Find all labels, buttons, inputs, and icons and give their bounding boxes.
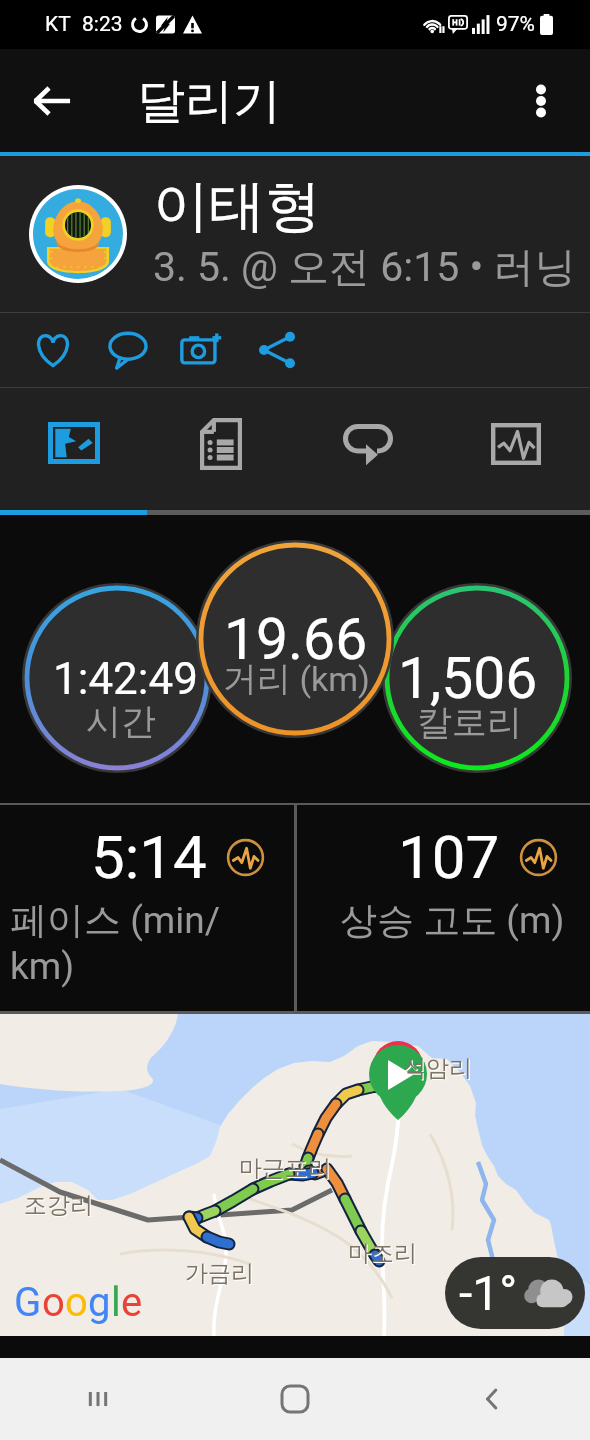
button[interactable]: Back bbox=[393, 1358, 590, 1440]
staticText: 시간 bbox=[86, 699, 156, 743]
button[interactable]: More options bbox=[510, 70, 572, 132]
button[interactable]: Recents bbox=[0, 1358, 196, 1440]
staticText: 19.66 bbox=[224, 606, 368, 673]
button[interactable]: Laps bbox=[294, 388, 442, 510]
staticText: e bbox=[121, 1279, 143, 1326]
staticText: 마조리 bbox=[349, 1240, 418, 1269]
button[interactable]: Map bbox=[0, 388, 147, 510]
staticText: 가금리 bbox=[185, 1259, 254, 1288]
staticText: 조강리 bbox=[25, 1192, 94, 1221]
staticText: 마근포리 bbox=[240, 1155, 332, 1184]
button[interactable]: Details bbox=[147, 388, 294, 510]
staticText: 조강리 bbox=[24, 1191, 93, 1220]
button[interactable]: Home bbox=[196, 1358, 393, 1440]
button[interactable]: 1,506 bbox=[382, 635, 572, 775]
staticText: 97% bbox=[496, 12, 535, 37]
button[interactable]: 107 bbox=[298, 805, 590, 1011]
button[interactable]: Comment bbox=[97, 319, 159, 381]
staticText: -1° bbox=[459, 1265, 518, 1321]
staticText: 석암리 bbox=[403, 1054, 472, 1083]
staticText: l bbox=[111, 1279, 121, 1326]
button[interactable]: Like bbox=[22, 319, 84, 381]
button[interactable]: Add photo bbox=[172, 319, 234, 381]
staticText: 1,506 bbox=[398, 645, 538, 712]
staticText: 페이스 (min/km) bbox=[10, 897, 234, 988]
staticText: 5:14 bbox=[91, 822, 207, 892]
button[interactable]: 1:42:49 bbox=[22, 635, 212, 775]
staticText: 상승 고도 (m) bbox=[340, 897, 565, 944]
staticText: g bbox=[88, 1279, 111, 1326]
staticText: 1:42:49 bbox=[53, 653, 198, 705]
button[interactable]: Heart rate bbox=[442, 388, 590, 510]
staticText: KT bbox=[45, 12, 71, 37]
staticText: o bbox=[42, 1279, 65, 1326]
button[interactable]: Share bbox=[247, 319, 309, 381]
button[interactable]: Route map bbox=[0, 1014, 590, 1336]
staticText: G bbox=[14, 1279, 42, 1326]
staticText: 107 bbox=[398, 822, 500, 892]
staticText: 가금리 bbox=[186, 1260, 255, 1289]
button[interactable]: 19.66 bbox=[196, 595, 394, 725]
staticText: 마조리 bbox=[348, 1239, 417, 1268]
button[interactable]: Weather bbox=[445, 1257, 585, 1329]
staticText: 이태형 bbox=[153, 171, 321, 242]
staticText: 석암리 bbox=[404, 1055, 473, 1084]
staticText: 달리기 bbox=[137, 71, 281, 131]
staticText: 거리 (km) bbox=[223, 658, 370, 701]
button[interactable]: Back bbox=[20, 69, 84, 133]
staticText: o bbox=[65, 1279, 88, 1326]
staticText: 마근포리 bbox=[239, 1154, 331, 1183]
button[interactable]: Profile photo bbox=[29, 185, 127, 283]
staticText: 3. 5. @ 오전 6:15 • 러닝 bbox=[153, 242, 576, 294]
staticText: 8:23 bbox=[82, 12, 123, 37]
staticText: 칼로리 bbox=[417, 700, 522, 744]
button[interactable]: 5:14 bbox=[0, 805, 295, 1011]
